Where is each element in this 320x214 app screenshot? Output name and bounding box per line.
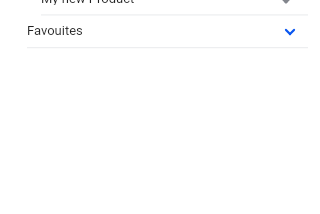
button[interactable]: Favouites [0, 14, 320, 47]
button[interactable]: My new Product [0, 0, 320, 14]
button[interactable]: Expand Favouites [280, 22, 300, 42]
button[interactable]: Collapse My new Product [276, 0, 296, 6]
staticText: My new Product [41, 0, 135, 5]
staticText: Favouites [27, 23, 83, 38]
